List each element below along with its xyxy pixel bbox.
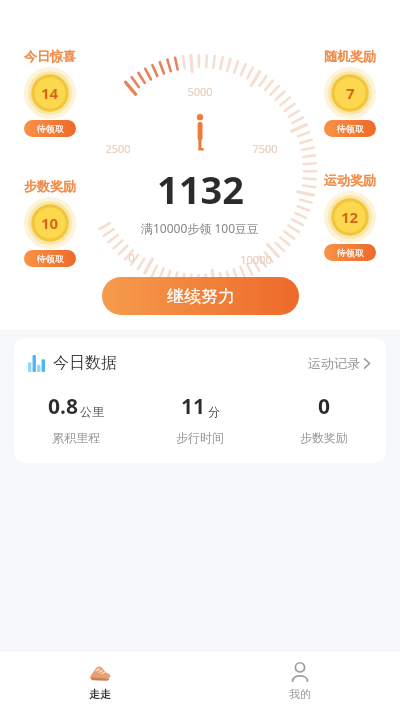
staticText: 11 (181, 392, 206, 421)
staticText: 1132 (157, 163, 244, 215)
button[interactable]: 我的 (200, 651, 400, 710)
button[interactable]: 11 (138, 392, 262, 445)
staticText: 步数奖励 (300, 430, 348, 445)
staticText: 待领取 (337, 247, 364, 258)
staticText: 12 (341, 207, 359, 227)
staticText: 随机奖励 (324, 48, 376, 64)
button[interactable]: 继续努力 (102, 277, 299, 315)
button[interactable]: 随机奖励 (310, 48, 390, 137)
button[interactable]: 运动奖励 (310, 172, 390, 261)
staticText: 7 (346, 83, 355, 103)
staticText: 运动奖励 (324, 172, 376, 188)
staticText: 14 (41, 83, 59, 103)
other: 走走 (89, 661, 111, 683)
staticText: 5000 (187, 84, 213, 99)
staticText: 待领取 (37, 123, 64, 134)
staticText: 分 (208, 404, 220, 419)
staticText: 走走 (89, 687, 111, 701)
staticText: 步数奖励 (24, 178, 76, 194)
staticText: 步行时间 (176, 430, 224, 445)
other: 我的 (289, 661, 311, 683)
staticText: 今日数据 (53, 353, 117, 373)
button[interactable]: 步数奖励 (10, 178, 90, 267)
button[interactable]: 今日惊喜 (10, 48, 90, 137)
staticText: 2500 (105, 141, 131, 156)
button[interactable]: 0 (262, 392, 386, 445)
staticText: 10000 (240, 252, 272, 267)
staticText: 今日惊喜 (24, 48, 76, 64)
staticText: 0 (128, 250, 135, 265)
button[interactable]: 运动记录 (306, 352, 372, 374)
staticText: 累积里程 (52, 430, 100, 445)
button[interactable]: 0.8 (14, 392, 138, 445)
staticText: 满10000步领 100豆豆 (141, 220, 260, 236)
staticText: 我的 (289, 687, 311, 701)
button[interactable]: 走走 (0, 651, 200, 710)
staticText: 继续努力 (167, 286, 235, 307)
staticText: 运动记录 (308, 355, 360, 371)
staticText: 7500 (252, 141, 278, 156)
staticText: 10 (41, 213, 59, 233)
staticText: 待领取 (37, 253, 64, 264)
staticText: 0.8 (48, 392, 78, 421)
staticText: 待领取 (337, 123, 364, 134)
staticText: 公里 (80, 404, 104, 419)
staticText: 0 (318, 392, 331, 421)
